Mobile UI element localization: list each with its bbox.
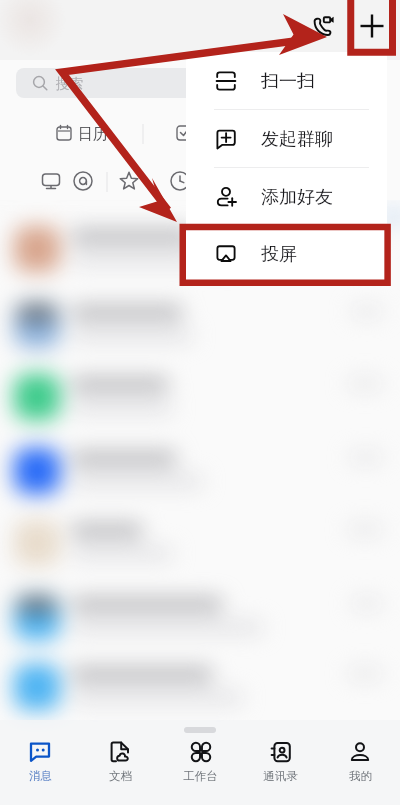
staticText: 添加好友: [261, 186, 333, 209]
staticText: 消息: [29, 769, 52, 783]
staticText: 投屏: [261, 243, 297, 266]
staticText: 工作台: [183, 769, 218, 783]
button[interactable]: 扫一扫: [186, 52, 387, 110]
button[interactable]: Todo: [175, 124, 193, 142]
button[interactable]: 我的: [320, 740, 400, 796]
button[interactable]: 工作台: [160, 740, 240, 796]
staticText: 通讯录: [263, 769, 298, 783]
staticText: 文档: [109, 769, 132, 783]
button[interactable]: 文档: [80, 740, 160, 796]
button[interactable]: 投屏: [186, 226, 387, 282]
button[interactable]: 发起群聊: [186, 110, 387, 168]
button[interactable]: Conference: [40, 170, 62, 192]
button[interactable]: 消息: [0, 740, 80, 796]
button[interactable]: Calendar: [55, 124, 73, 142]
button[interactable]: Mentions: [72, 170, 94, 192]
button[interactable]: 通讯录: [240, 740, 320, 796]
staticText: 搜索: [56, 75, 83, 92]
button[interactable]: Add: [351, 5, 393, 47]
button[interactable]: Favourites: [118, 170, 140, 192]
staticText: 发起群聊: [261, 128, 333, 151]
button[interactable]: 添加好友: [186, 168, 387, 226]
staticText: 我的: [349, 769, 372, 783]
staticText: 日历: [78, 125, 108, 144]
button[interactable]: Video call: [302, 5, 344, 47]
staticText: 扫一扫: [261, 70, 315, 93]
button[interactable]: Recent: [169, 170, 191, 192]
